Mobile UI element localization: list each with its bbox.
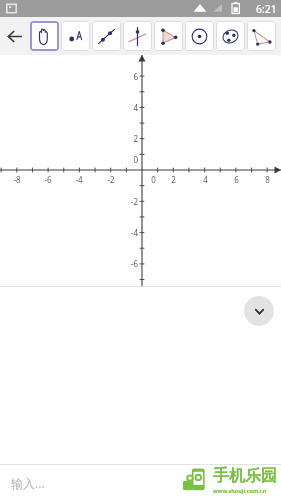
button[interactable]: Angle (247, 21, 276, 51)
staticText: -8 (13, 174, 21, 185)
staticText: -6 (130, 258, 138, 269)
staticText: www.shouji.com.cn (213, 487, 267, 494)
button[interactable]: Point (61, 21, 90, 51)
staticText: -6 (44, 174, 52, 185)
staticText: 8 (265, 174, 270, 185)
staticText: 4 (133, 102, 138, 113)
staticText: 手机乐园 (213, 466, 277, 486)
staticText: 6:21 (256, 2, 277, 16)
staticText: -2 (130, 196, 138, 207)
button[interactable]: Line (92, 21, 121, 51)
staticText: 6 (234, 174, 239, 185)
button[interactable]: Polygon (154, 21, 183, 51)
button[interactable]: Conic (216, 21, 245, 51)
button[interactable]: Move (30, 21, 59, 51)
button[interactable]: Back (0, 17, 29, 55)
staticText: -2 (107, 174, 115, 185)
button[interactable]: Collapse panel (244, 296, 274, 326)
staticText: -4 (75, 174, 83, 185)
button[interactable]: Perpendicular (123, 21, 152, 51)
staticText: 2 (171, 174, 176, 185)
staticText: 2 (133, 133, 138, 144)
staticText: -4 (130, 227, 138, 238)
staticText: 输入... (11, 475, 45, 491)
button[interactable]: 输入... (0, 465, 281, 500)
staticText: 0 (151, 174, 156, 185)
staticText: 6 (133, 71, 138, 82)
button[interactable]: Circle (185, 21, 214, 51)
staticText: 4 (203, 174, 208, 185)
staticText: 0 (133, 154, 138, 165)
